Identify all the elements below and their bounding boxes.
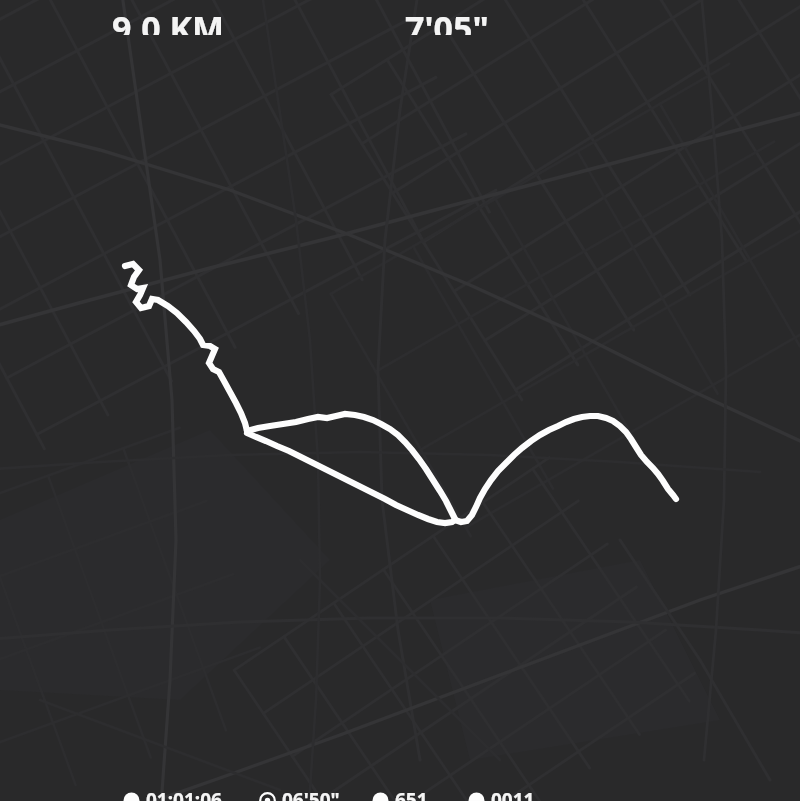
other: 651 bbox=[372, 792, 389, 801]
other: 01:01:06 bbox=[123, 792, 140, 801]
other: 0011 bbox=[468, 792, 485, 801]
staticText: 06'50" bbox=[282, 787, 340, 801]
button[interactable]: 9,0 KM bbox=[0, 0, 800, 30]
staticText: 9,0 KM bbox=[112, 5, 225, 35]
staticText: 7'05" bbox=[405, 5, 489, 35]
button[interactable]: 651 bbox=[372, 787, 428, 801]
staticText: 0011 bbox=[491, 787, 535, 801]
button[interactable]: 06'50" bbox=[259, 787, 340, 801]
button[interactable]: 01:01:06 bbox=[123, 787, 222, 801]
staticText: 01:01:06 bbox=[146, 787, 222, 801]
button[interactable]: 0011 bbox=[468, 787, 535, 801]
other: 06'50" bbox=[259, 792, 276, 801]
staticText: 651 bbox=[395, 787, 428, 801]
